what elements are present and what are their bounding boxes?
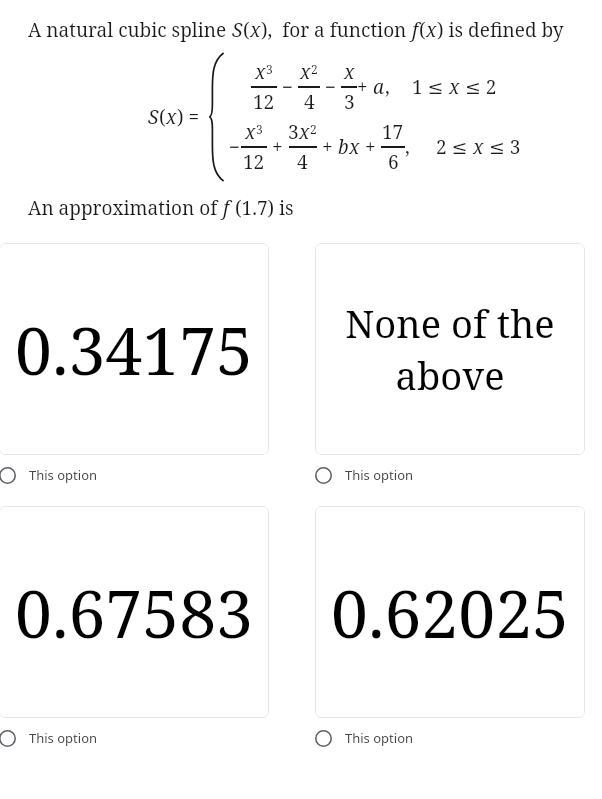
staticText: − (320, 74, 341, 100)
staticText: x (473, 134, 484, 160)
button[interactable]: Select None of the above (315, 466, 414, 484)
staticText: b (338, 134, 349, 160)
staticText: + (317, 134, 338, 160)
staticText: 4 (304, 89, 315, 115)
button[interactable]: 0.67583 (0, 506, 269, 718)
staticText: x (449, 74, 460, 100)
staticText: None of the above (315, 297, 585, 401)
button[interactable]: Select 0.62025 (315, 729, 414, 747)
staticText: , (405, 134, 410, 160)
staticText: (1.7) is (230, 195, 294, 221)
staticText: x (344, 59, 355, 85)
staticText: 2 (311, 61, 318, 77)
staticText: ≤ 3 (484, 134, 521, 160)
staticText: A natural cubic spline (28, 17, 232, 43)
button[interactable]: None of the above (315, 243, 585, 455)
staticText: 2 (310, 121, 317, 137)
staticText: ), for a function (261, 17, 412, 43)
staticText: S (148, 104, 159, 130)
staticText: ) is defined by (437, 17, 564, 43)
staticText: a (373, 74, 385, 100)
staticText: 4 (297, 149, 308, 175)
other: Select 0.67583 (0, 730, 16, 747)
staticText: x (300, 59, 311, 85)
staticText: 3 (256, 121, 263, 137)
staticText: − (277, 74, 298, 100)
staticText: + (360, 134, 381, 160)
staticText: + (267, 134, 288, 160)
staticText: An approximation of (28, 195, 223, 221)
staticText: x (166, 104, 177, 130)
staticText: 3 (266, 61, 273, 77)
button[interactable]: Select 0.67583 (0, 729, 98, 747)
button[interactable]: 0.34175 (0, 243, 269, 455)
staticText: + (357, 74, 373, 100)
staticText: 12 (253, 89, 275, 115)
staticText: x (349, 134, 360, 160)
staticText: x (250, 17, 261, 43)
staticText: 0.34175 (15, 304, 253, 394)
staticText: 3 (344, 89, 355, 115)
other: Select 0.62025 (315, 730, 332, 747)
staticText: x (245, 119, 256, 145)
button[interactable]: Select 0.34175 (0, 466, 98, 484)
staticText: This option (345, 729, 414, 747)
staticText: , (385, 74, 390, 100)
staticText: This option (345, 466, 414, 484)
staticText: − (229, 134, 241, 160)
other: Select None of the above (315, 467, 332, 484)
staticText: This option (29, 729, 98, 747)
staticText: ) = (177, 104, 205, 130)
staticText: ≤ 2 (460, 74, 497, 100)
staticText: 3 (288, 119, 299, 145)
staticText: 12 (243, 149, 265, 175)
staticText: ( (159, 104, 166, 130)
staticText: 6 (388, 149, 399, 175)
staticText: This option (29, 466, 98, 484)
staticText: ( (419, 17, 426, 43)
staticText: 0.67583 (15, 567, 253, 657)
staticText: 17 (382, 119, 404, 145)
staticText: 1 ≤ (412, 74, 449, 100)
button[interactable]: 0.62025 (315, 506, 585, 718)
staticText: S (232, 17, 243, 43)
staticText: x (255, 59, 266, 85)
staticText: x (426, 17, 437, 43)
staticText: x (299, 119, 310, 145)
staticText: ( (243, 17, 250, 43)
staticText: 2 ≤ (436, 134, 473, 160)
staticText: f (412, 17, 419, 43)
other: Select 0.34175 (0, 467, 16, 484)
staticText: f (223, 195, 230, 221)
staticText: 0.62025 (331, 567, 569, 657)
